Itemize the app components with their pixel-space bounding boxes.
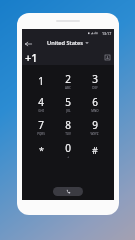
staticText: 9	[92, 118, 98, 132]
button[interactable]: Back	[23, 38, 34, 49]
staticText: 2	[65, 72, 71, 86]
staticText: 1	[38, 74, 44, 88]
staticText: ABC	[65, 86, 71, 90]
staticText: 13:17	[102, 31, 112, 36]
staticText: 0	[65, 141, 71, 155]
button[interactable]: #	[81, 138, 108, 161]
staticText: 5	[65, 95, 71, 109]
staticText: 7	[38, 118, 44, 132]
button[interactable]: Add contact	[103, 53, 112, 62]
button[interactable]: 5	[54, 92, 81, 115]
staticText: #	[92, 144, 98, 156]
button[interactable]: 3	[81, 69, 108, 92]
staticText: GHI	[38, 109, 44, 113]
button[interactable]: 8	[54, 115, 81, 138]
button[interactable]: 7	[28, 115, 54, 138]
button[interactable]: 2	[54, 69, 81, 92]
button[interactable]: 0	[54, 138, 81, 161]
staticText: +1	[25, 50, 38, 65]
staticText: TUV	[65, 132, 71, 136]
staticText: DEF	[92, 86, 98, 90]
staticText: 4	[38, 95, 44, 109]
staticText: PQRS	[37, 132, 45, 136]
button[interactable]: United States	[45, 37, 91, 49]
staticText: +	[67, 155, 69, 159]
staticText: *	[39, 144, 44, 156]
staticText: JKL	[66, 109, 71, 113]
button[interactable]: 9	[81, 115, 108, 138]
button[interactable]: 1	[28, 69, 54, 92]
staticText: 8	[65, 118, 71, 132]
staticText: 6	[92, 95, 98, 109]
staticText: 3	[92, 72, 98, 86]
button[interactable]: 6	[81, 92, 108, 115]
button[interactable]: *	[28, 138, 54, 161]
staticText: United States	[47, 39, 83, 47]
button[interactable]: 4	[28, 92, 54, 115]
staticText: MNO	[91, 109, 99, 113]
button[interactable]: Call	[53, 187, 83, 196]
staticText: WXYZ	[90, 132, 99, 136]
